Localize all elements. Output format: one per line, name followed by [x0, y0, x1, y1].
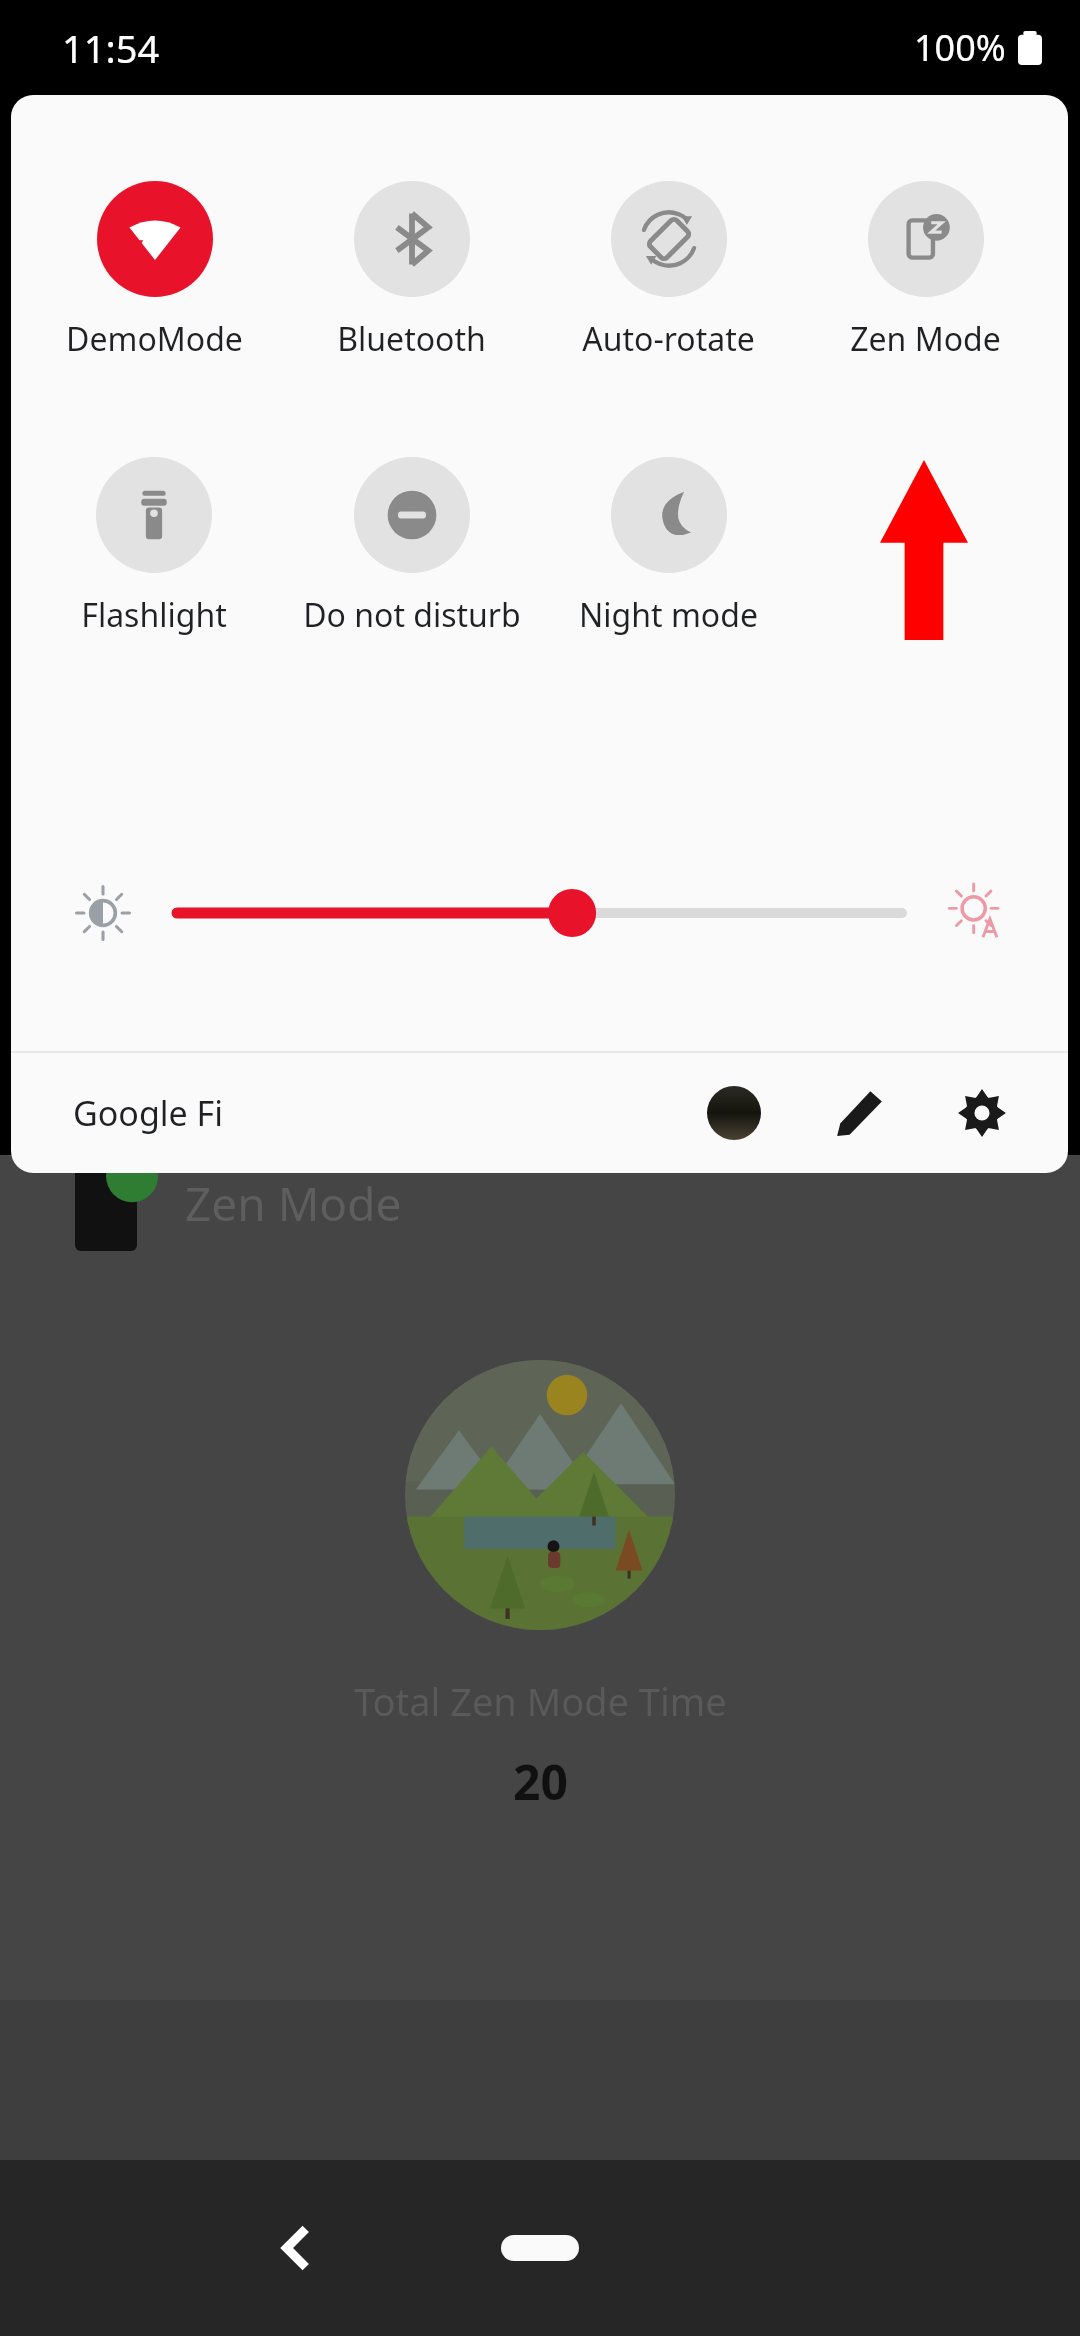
- button[interactable]: Flashlight: [81, 453, 227, 641]
- staticText: Total Zen Mode Time: [354, 1675, 727, 1727]
- button[interactable]: Google Fi: [73, 1090, 224, 1136]
- staticText: Auto-rotate: [582, 317, 755, 361]
- staticText: 100%: [914, 23, 1006, 72]
- button[interactable]: Account: [696, 1075, 772, 1151]
- button[interactable]: Settings: [944, 1075, 1020, 1151]
- staticText: Zen Mode: [185, 1172, 402, 1235]
- button[interactable]: [177, 883, 902, 943]
- button[interactable]: Edit: [822, 1075, 898, 1151]
- button[interactable]: Brightness: [61, 871, 145, 955]
- button[interactable]: Do not disturb: [303, 453, 521, 641]
- button[interactable]: Auto brightness: [934, 871, 1018, 955]
- staticText: DemoMode: [66, 317, 243, 361]
- button[interactable]: Zen Mode: [850, 177, 1001, 365]
- button[interactable]: Night mode: [579, 453, 758, 641]
- staticText: 20: [513, 1749, 568, 1814]
- button[interactable]: Auto-rotate: [582, 177, 755, 365]
- staticText: Bluetooth: [337, 317, 486, 361]
- staticText: Night mode: [579, 593, 758, 637]
- staticText: 11:54: [62, 22, 160, 74]
- button[interactable]: Bluetooth: [337, 177, 486, 365]
- staticText: Zen Mode: [850, 317, 1001, 361]
- button[interactable]: Back: [240, 2193, 350, 2303]
- button[interactable]: DemoMode: [66, 177, 243, 365]
- button[interactable]: Home: [450, 2203, 630, 2293]
- staticText: Do not disturb: [303, 593, 521, 637]
- staticText: Flashlight: [81, 593, 227, 637]
